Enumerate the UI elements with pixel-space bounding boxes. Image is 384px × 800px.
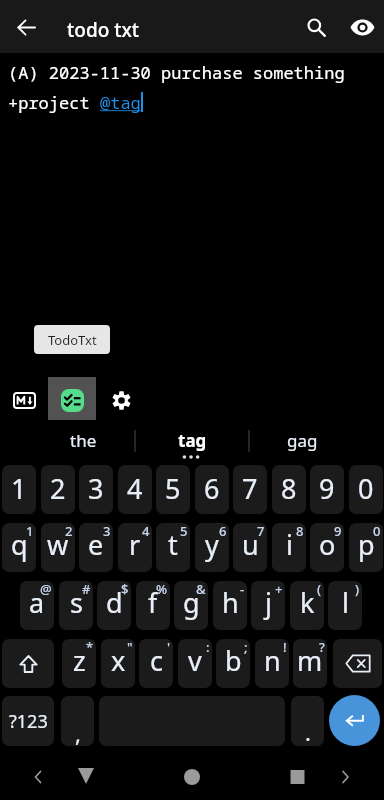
button[interactable]: m (293, 639, 327, 688)
button[interactable]: r (118, 523, 152, 572)
button[interactable]: h (213, 581, 247, 630)
staticText: 7 (242, 470, 258, 507)
button[interactable]: 1 (2, 465, 36, 514)
staticText: m (297, 642, 323, 679)
staticText: x (111, 642, 126, 679)
staticText: e (88, 526, 104, 563)
button[interactable]: o (310, 523, 344, 572)
staticText: 8 (296, 523, 304, 540)
button[interactable]: 8 (272, 465, 306, 514)
staticText: z (73, 642, 86, 679)
staticText: 0 (373, 523, 381, 540)
button[interactable]: z (62, 639, 96, 688)
button[interactable]: p (349, 523, 383, 572)
staticText: w (47, 526, 69, 563)
staticText: 1 (26, 523, 34, 540)
button[interactable]: Backspace (333, 639, 382, 688)
staticText: r (129, 526, 141, 563)
button[interactable]: 5 (156, 465, 190, 514)
staticText: h (222, 584, 239, 621)
button[interactable]: d (97, 581, 131, 630)
staticText: 5 (165, 470, 181, 507)
button[interactable]: f (136, 581, 170, 630)
staticText: 4 (127, 470, 143, 507)
button[interactable]: 0 (349, 465, 383, 514)
button[interactable]: n (255, 639, 289, 688)
staticText: u (242, 526, 259, 563)
button[interactable]: q (2, 523, 36, 572)
button[interactable]: tag (134, 420, 248, 465)
button[interactable]: x (101, 639, 135, 688)
button[interactable]: TodoTxt (48, 379, 96, 422)
staticText: * (86, 639, 94, 656)
staticText: 9 (334, 523, 342, 540)
staticText: # (82, 581, 91, 598)
button[interactable]: Markdown (4, 379, 44, 422)
staticText: s (70, 584, 83, 621)
button[interactable]: Search (298, 9, 334, 45)
staticText: : (206, 639, 210, 656)
button[interactable]: w (41, 523, 75, 572)
staticText: g (183, 584, 200, 621)
staticText: j (265, 584, 272, 621)
staticText: +project (8, 91, 100, 114)
button[interactable]: s (59, 581, 93, 630)
staticText: n (264, 642, 281, 679)
button[interactable]: i (272, 523, 306, 572)
staticText: $ (121, 581, 129, 598)
button[interactable]: Navigate up (10, 11, 42, 43)
staticText: 1 (11, 470, 27, 507)
button[interactable]: l (328, 581, 362, 630)
button[interactable]: j (251, 581, 285, 630)
button[interactable]: c (139, 639, 173, 688)
staticText: 6 (219, 523, 227, 540)
button[interactable]: y (195, 523, 229, 572)
button[interactable]: the (30, 420, 133, 465)
button[interactable]: 4 (118, 465, 152, 514)
button[interactable]: u (233, 523, 267, 572)
button[interactable]: 7 (233, 465, 267, 514)
staticText: ? (319, 639, 325, 656)
staticText: l (342, 584, 349, 621)
button[interactable]: ?123 (2, 696, 54, 746)
staticText: c (150, 642, 163, 679)
button[interactable]: v (178, 639, 212, 688)
button[interactable]: Preview (344, 9, 380, 45)
button[interactable]: k (290, 581, 324, 630)
button[interactable]: 9 (310, 465, 344, 514)
button[interactable]: Settings (101, 379, 141, 422)
staticText: ) (355, 581, 360, 598)
staticText: todo txt (67, 17, 140, 43)
button[interactable]: e (79, 523, 113, 572)
button[interactable]: 2 (41, 465, 75, 514)
button[interactable]: t (156, 523, 190, 572)
staticText: i (286, 526, 293, 563)
staticText: y (205, 526, 219, 563)
staticText: + (275, 581, 283, 598)
staticText: a (29, 584, 45, 621)
staticText: the (70, 429, 97, 452)
button[interactable]: 6 (195, 465, 229, 514)
staticText: TodoTxt (48, 331, 97, 349)
staticText: ?123 (9, 709, 48, 734)
button[interactable]: Shift (2, 639, 54, 688)
button[interactable]: 3 (79, 465, 113, 514)
staticText: 3 (103, 523, 111, 540)
button[interactable]: b (216, 639, 250, 688)
staticText: 2 (65, 523, 73, 540)
staticText: % (156, 581, 168, 598)
staticText: 6 (204, 470, 220, 507)
button[interactable]: . (291, 696, 324, 746)
staticText: ' (167, 639, 171, 656)
button[interactable]: Enter (329, 695, 380, 746)
staticText: . (305, 717, 311, 746)
staticText: 9 (319, 470, 335, 507)
button[interactable]: a (20, 581, 54, 630)
button[interactable]: g (174, 581, 208, 630)
staticText: (A) 2023-11-30 purchase something (8, 61, 345, 84)
staticText: q (11, 526, 28, 563)
button[interactable]: gag (249, 420, 354, 465)
staticText: ! (283, 639, 287, 656)
button[interactable]: , (61, 696, 94, 746)
